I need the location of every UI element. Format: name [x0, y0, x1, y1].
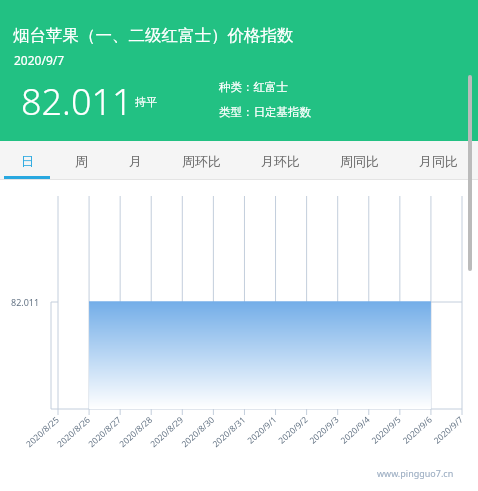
button[interactable]: 周环比 [162, 141, 241, 180]
button[interactable]: 月环比 [241, 141, 320, 180]
staticText: 2020/9/7 [14, 52, 65, 68]
button[interactable]: 日 [0, 141, 54, 180]
staticText: 周环比 [182, 153, 221, 169]
staticText: 持平 [135, 95, 157, 109]
staticText: 月同比 [419, 153, 458, 169]
staticText: 周 [75, 153, 88, 169]
staticText: 月 [129, 153, 142, 169]
staticText: 类型：日定基指数 [219, 105, 311, 119]
button[interactable]: 周同比 [320, 141, 399, 180]
staticText: 82.011 [21, 77, 133, 126]
button[interactable]: 月同比 [399, 141, 478, 180]
staticText: 日 [21, 153, 34, 169]
staticText: 烟台苹果（一、二级红富士）价格指数 [13, 25, 294, 46]
staticText: 周同比 [340, 153, 379, 169]
other: Price index area chart [0, 180, 478, 491]
staticText: 月环比 [261, 153, 300, 169]
button[interactable]: 月 [108, 141, 162, 180]
button[interactable]: 周 [54, 141, 108, 180]
staticText: 种类：红富士 [219, 80, 288, 94]
